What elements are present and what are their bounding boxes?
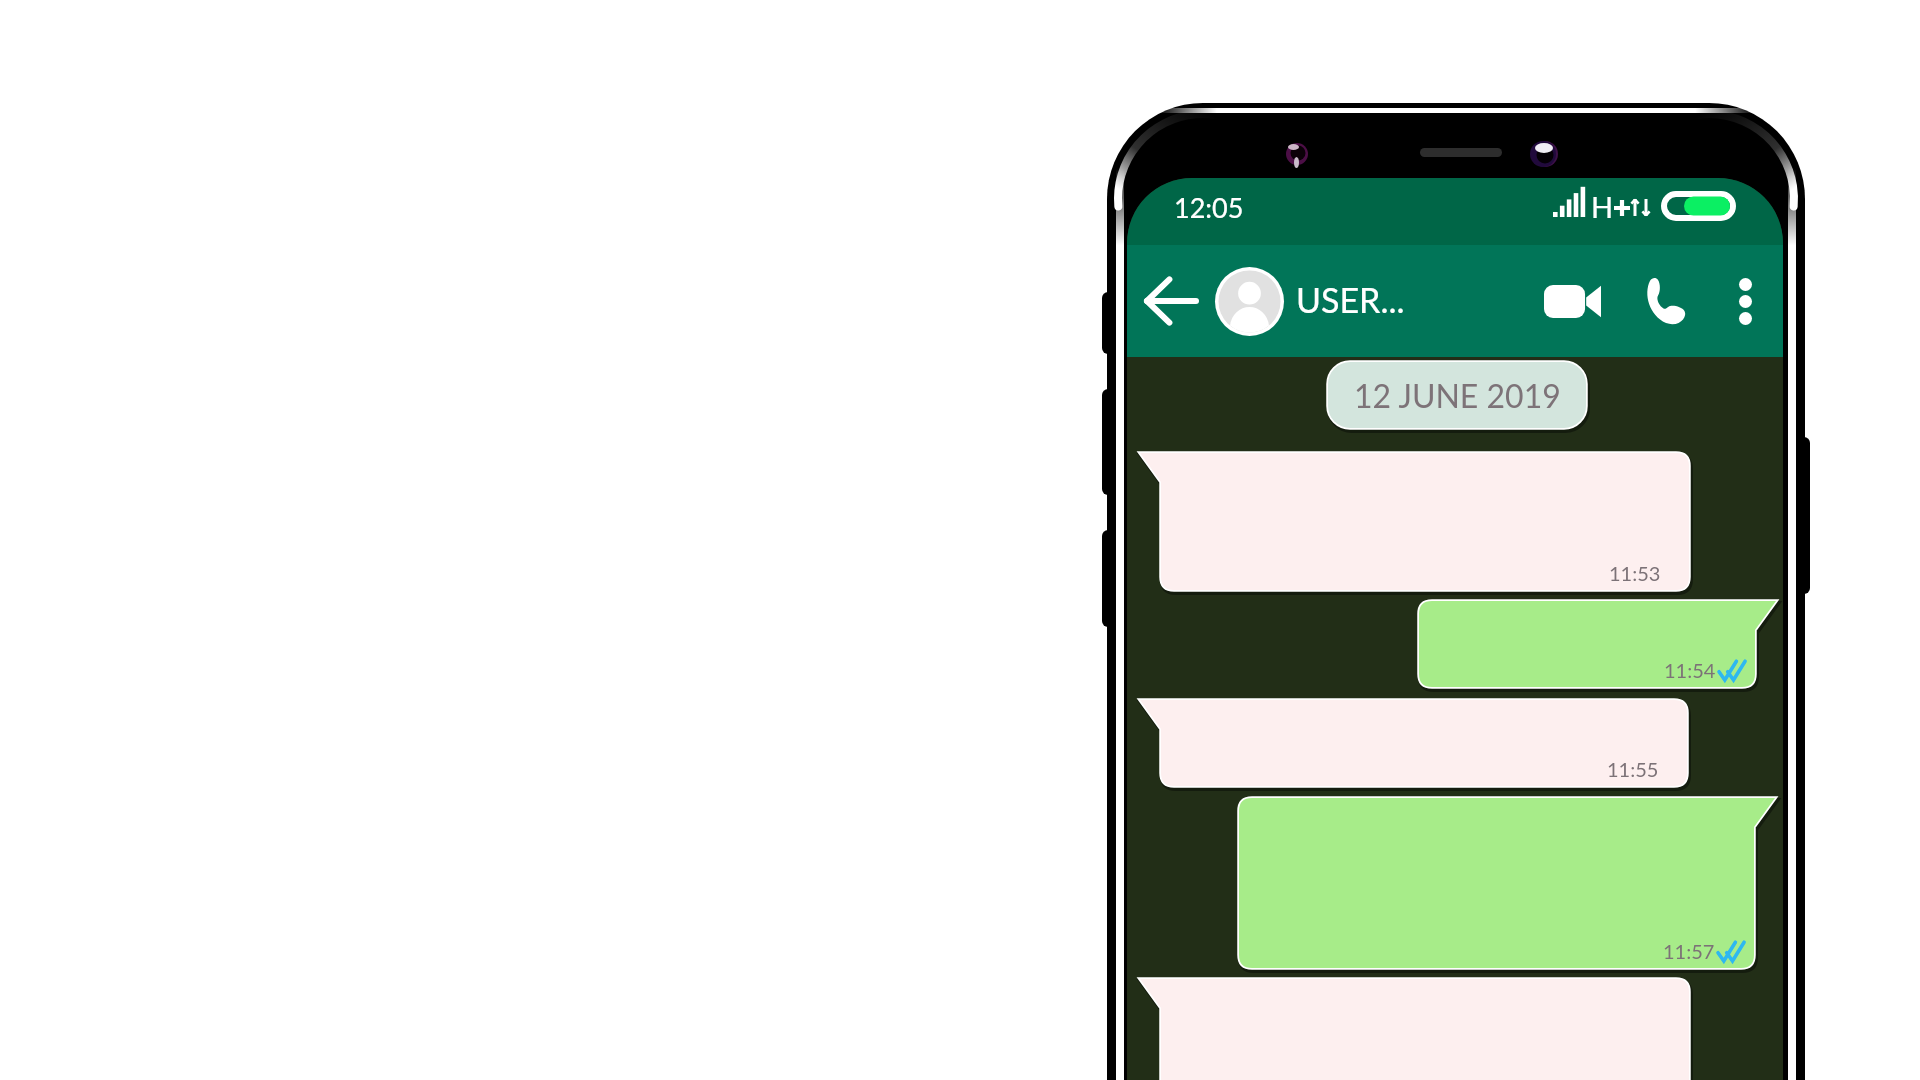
staticText: 12 JUNE 2019 [1354, 376, 1561, 414]
staticText: 11:55 [1607, 757, 1659, 781]
button[interactable]: More options [1707, 245, 1783, 357]
staticText: USER... [1296, 279, 1405, 320]
button[interactable]: 11:53 [1140, 453, 1689, 590]
button[interactable]: Call [1621, 245, 1707, 357]
button[interactable]: 11:54 [1419, 601, 1776, 687]
staticText: 11:57 [1663, 939, 1715, 963]
staticText: 11:53 [1609, 561, 1661, 585]
staticText: H [1591, 189, 1614, 224]
button[interactable]: Back [1127, 245, 1215, 357]
button[interactable] [1140, 979, 1689, 1080]
button[interactable]: 12 JUNE 2019 [1328, 362, 1586, 428]
button[interactable]: Video call [1523, 245, 1621, 357]
button[interactable]: USER... [1215, 245, 1523, 357]
button[interactable]: 11:57 [1239, 798, 1775, 968]
button[interactable]: 11:55 [1140, 700, 1687, 786]
staticText: 11:54 [1664, 658, 1716, 682]
staticText: 12:05 [1174, 191, 1244, 223]
